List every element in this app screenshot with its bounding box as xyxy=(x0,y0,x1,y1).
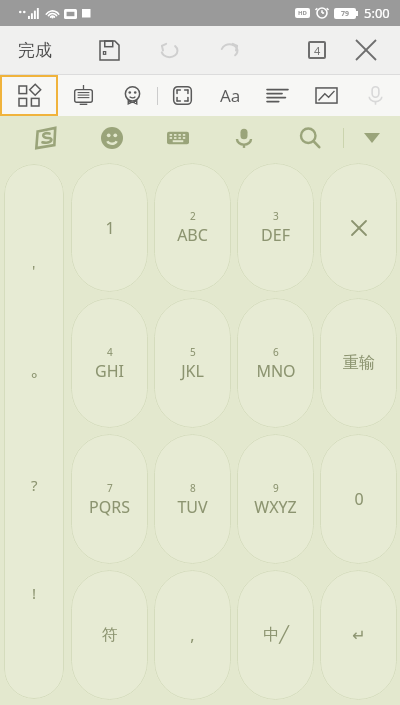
staticText: 79 xyxy=(341,9,350,19)
staticText: 5 xyxy=(190,345,196,359)
staticText: PQRS xyxy=(89,496,130,518)
button[interactable]: Close xyxy=(346,30,386,70)
button[interactable]: 0 xyxy=(320,434,397,564)
button[interactable]: Voice xyxy=(351,75,400,116)
button[interactable]: Tools xyxy=(0,75,58,116)
staticText: ! xyxy=(32,583,37,603)
button[interactable]: ↵ xyxy=(320,570,397,700)
staticText: ° xyxy=(31,368,38,388)
button[interactable]: 重输 xyxy=(320,298,397,428)
button[interactable]: Voice input xyxy=(211,116,277,160)
button[interactable]: , xyxy=(154,570,231,700)
button[interactable]: Image xyxy=(302,75,351,116)
button[interactable]: ' xyxy=(4,164,64,699)
staticText: HD xyxy=(298,9,307,17)
button[interactable]: Aa xyxy=(207,75,253,116)
button[interactable]: Align xyxy=(253,75,302,116)
staticText: Aa xyxy=(220,84,241,107)
staticText: MNO xyxy=(256,360,296,382)
staticText: ABC xyxy=(177,224,208,246)
staticText: JKL xyxy=(181,360,204,382)
staticText: 0 xyxy=(354,488,364,510)
button[interactable]: Hide keyboard xyxy=(344,116,400,160)
button[interactable]: Search xyxy=(277,116,343,160)
staticText: 3 xyxy=(273,209,279,223)
staticText: WXYZ xyxy=(254,496,297,518)
staticText: DEF xyxy=(261,224,290,246)
staticText: 1 xyxy=(105,217,115,239)
button[interactable]: 7 xyxy=(71,434,148,564)
button[interactable]: Template xyxy=(58,75,108,116)
staticText: ↵ xyxy=(352,626,366,645)
button[interactable]: Undo xyxy=(150,31,188,69)
staticText: 中╱ xyxy=(263,625,289,645)
staticText: 4 xyxy=(314,43,321,58)
button[interactable]: 符 xyxy=(71,570,148,700)
button[interactable]: 4 xyxy=(71,298,148,428)
staticText: 6 xyxy=(273,345,279,359)
button[interactable]: 完成 xyxy=(14,34,56,67)
button[interactable]: Emoji xyxy=(108,75,157,116)
staticText: 符 xyxy=(102,625,118,645)
staticText: 7 xyxy=(107,481,113,495)
staticText: 2 xyxy=(190,209,196,223)
staticText: 完成 xyxy=(18,40,52,61)
button[interactable]: 3 xyxy=(237,163,314,292)
staticText: TUV xyxy=(177,496,208,518)
button[interactable]: 2 xyxy=(154,163,231,292)
button[interactable]: Sogou xyxy=(12,116,79,160)
staticText: 重输 xyxy=(343,353,375,373)
staticText: 5:00 xyxy=(364,4,390,22)
button[interactable]: Redo xyxy=(210,31,248,69)
button[interactable]: Save xyxy=(90,31,128,69)
button[interactable]: Emoji xyxy=(79,116,145,160)
staticText: 8 xyxy=(190,481,196,495)
button[interactable]: 8 xyxy=(154,434,231,564)
button[interactable] xyxy=(320,163,397,292)
button[interactable]: 9 xyxy=(237,434,314,564)
staticText: , xyxy=(190,624,195,646)
staticText: ? xyxy=(31,475,38,495)
staticText: 9 xyxy=(273,481,279,495)
button[interactable]: 1 xyxy=(71,163,148,292)
button[interactable]: Pages: 4 xyxy=(298,31,336,69)
staticText: ' xyxy=(32,260,36,280)
button[interactable]: 6 xyxy=(237,298,314,428)
button[interactable]: Keyboard xyxy=(145,116,211,160)
button[interactable]: 5 xyxy=(154,298,231,428)
staticText: GHI xyxy=(95,360,124,382)
staticText: 4 xyxy=(107,345,113,359)
button[interactable]: Scan xyxy=(158,75,207,116)
button[interactable]: 中╱ xyxy=(237,570,314,700)
